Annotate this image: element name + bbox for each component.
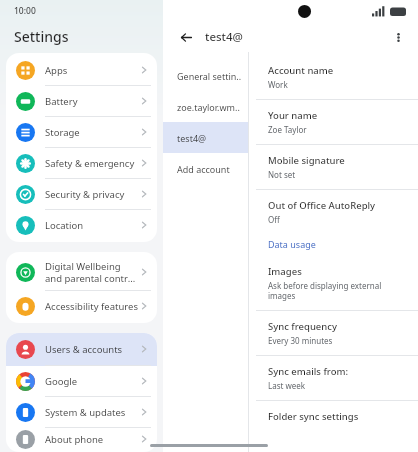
staticText: Data usage [268, 238, 316, 250]
button[interactable]: Data usage [249, 234, 418, 256]
staticText: test4@ [205, 29, 386, 45]
button[interactable]: Apps [6, 55, 157, 86]
staticText: Users & accounts [45, 343, 139, 356]
button[interactable]: Sync frequency [249, 311, 418, 356]
staticText: Zoe Taylor [268, 124, 307, 135]
button[interactable]: Users & accounts [6, 333, 157, 366]
staticText: Ask before displaying external images [268, 280, 408, 301]
button[interactable]: Location [6, 210, 157, 240]
staticText: Account name [268, 64, 334, 77]
button[interactable]: test4@ [163, 122, 248, 153]
staticText: test4@ [177, 132, 207, 144]
button[interactable]: zoe.taylor.wm.. [163, 91, 248, 122]
staticText: Battery [45, 95, 139, 108]
button[interactable]: Folder sync settings [249, 401, 418, 432]
staticText: 10:00 [14, 5, 36, 17]
staticText: Mobile signature [268, 154, 345, 167]
button[interactable]: About phone [6, 428, 157, 450]
button[interactable]: General settin.. [163, 60, 248, 91]
button[interactable]: Accessibility features [6, 291, 157, 321]
staticText: Images [268, 265, 302, 278]
staticText: Google [45, 375, 139, 388]
staticText: Off [268, 214, 280, 225]
button[interactable]: More options [386, 25, 410, 49]
staticText: zoe.taylor.wm.. [177, 101, 240, 113]
staticText: Not set [268, 169, 296, 180]
staticText: Add account [177, 163, 230, 175]
staticText: Last week [268, 380, 306, 391]
staticText: Your name [268, 109, 318, 122]
button[interactable]: Mobile signature [249, 145, 418, 190]
staticText: Work [268, 79, 288, 90]
button[interactable]: Battery [6, 86, 157, 117]
staticText: Safety & emergency [45, 157, 139, 170]
staticText: Every 30 minutes [268, 335, 333, 346]
staticText: About phone [45, 433, 139, 446]
staticText: Sync emails from: [268, 365, 349, 378]
button[interactable]: Safety & emergency [6, 148, 157, 179]
staticText: Location [45, 219, 139, 232]
button[interactable]: Sync emails from: [249, 356, 418, 401]
staticText: Apps [45, 64, 139, 77]
staticText: Sync frequency [268, 320, 337, 333]
button[interactable]: Add account [163, 153, 248, 184]
button[interactable]: Images [249, 256, 418, 311]
button[interactable]: Digital Wellbeing and parental controls [6, 254, 157, 291]
button[interactable]: Storage [6, 117, 157, 148]
button[interactable]: Back [175, 26, 197, 48]
button[interactable]: System & updates [6, 397, 157, 428]
button[interactable]: Security & privacy [6, 179, 157, 210]
button[interactable]: Out of Office AutoReply [249, 190, 418, 234]
staticText: Accessibility features [45, 300, 139, 313]
staticText: System & updates [45, 406, 139, 419]
staticText: General settin.. [177, 70, 242, 82]
staticText: Digital Wellbeing and parental controls [45, 260, 139, 285]
staticText: Out of Office AutoReply [268, 199, 376, 212]
staticText: Settings [14, 27, 69, 46]
button[interactable]: Your name [249, 100, 418, 145]
staticText: Security & privacy [45, 188, 139, 201]
staticText: Storage [45, 126, 139, 139]
button[interactable]: Google [6, 366, 157, 397]
button[interactable]: Account name [249, 55, 418, 100]
staticText: Folder sync settings [268, 410, 359, 423]
